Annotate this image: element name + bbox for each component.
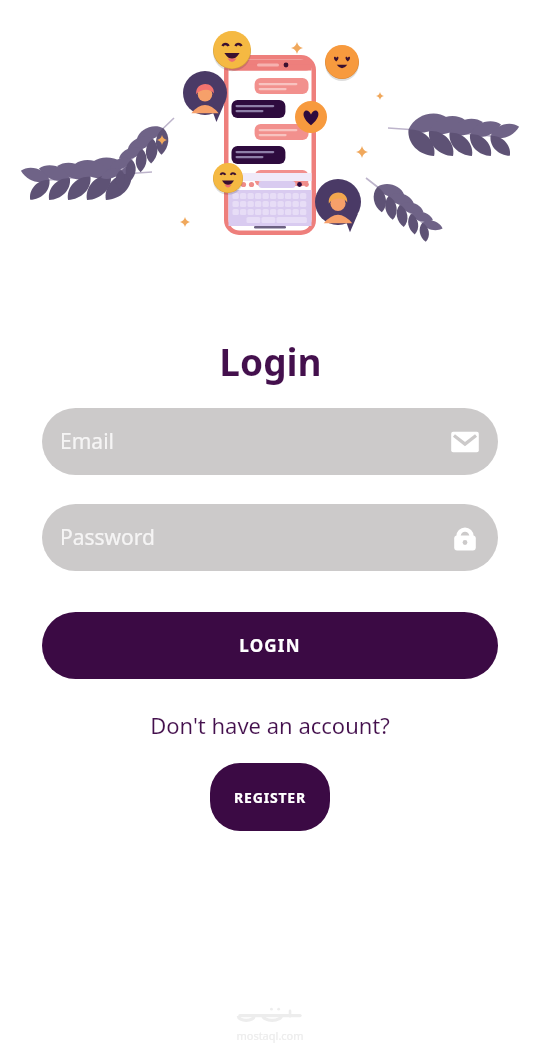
staticText: Email [60, 427, 114, 456]
button[interactable]: Email [42, 408, 498, 475]
staticText: LOGIN [239, 634, 301, 657]
button[interactable]: Password [42, 504, 498, 571]
button[interactable]: REGISTER [210, 763, 330, 831]
staticText: Password [60, 523, 155, 552]
staticText: mostaql.com [236, 1028, 304, 1043]
button[interactable]: LOGIN [42, 612, 498, 679]
staticText: REGISTER [234, 788, 306, 807]
staticText: Don't have an account? [150, 710, 390, 740]
staticText: Login [219, 336, 322, 386]
